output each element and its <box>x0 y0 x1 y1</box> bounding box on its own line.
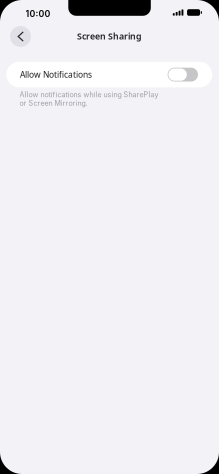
button[interactable]: Back <box>10 26 31 47</box>
staticText: Allow Notifications <box>20 69 92 80</box>
staticText: 10:00 <box>25 9 50 19</box>
button[interactable]: Allow Notifications <box>6 62 212 87</box>
staticText: Allow notifications while using SharePla… <box>20 90 159 107</box>
staticText: Screen Sharing <box>77 30 142 42</box>
